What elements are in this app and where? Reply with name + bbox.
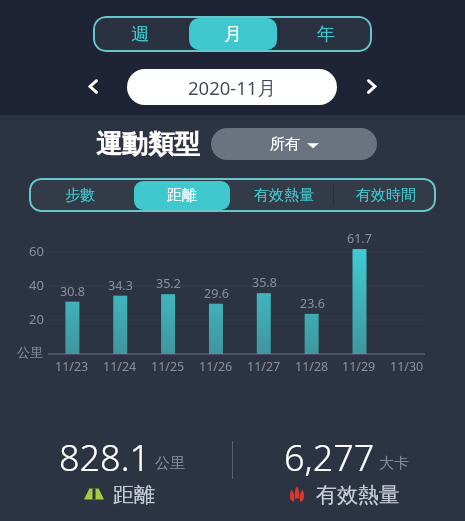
- staticText: 2020-11月: [188, 75, 276, 100]
- button[interactable]: 距離: [131, 178, 233, 212]
- button[interactable]: 828.1: [9, 434, 229, 514]
- staticText: 有效時間: [356, 186, 416, 205]
- staticText: 公里: [155, 454, 185, 473]
- staticText: 23.6: [300, 295, 325, 312]
- button[interactable]: 有效時間: [335, 178, 436, 212]
- staticText: 11/24: [103, 358, 137, 375]
- staticText: 運動類型: [96, 128, 200, 161]
- staticText: 29.6: [204, 285, 229, 302]
- staticText: 35.2: [156, 275, 181, 292]
- staticText: 有效熱量: [316, 482, 400, 506]
- button[interactable]: 2020-11月: [127, 69, 337, 105]
- staticText: 週: [131, 23, 149, 46]
- staticText: 828.1: [59, 433, 151, 479]
- staticText: 40: [29, 276, 44, 294]
- staticText: 20: [29, 310, 44, 328]
- staticText: 11/28: [295, 358, 329, 375]
- staticText: 11/29: [342, 358, 376, 375]
- staticText: 公里: [17, 344, 43, 360]
- staticText: 34.3: [108, 277, 133, 294]
- staticText: 月: [224, 23, 242, 46]
- staticText: 有效熱量: [254, 186, 314, 205]
- button[interactable]: 週: [93, 16, 186, 52]
- staticText: 距離: [113, 482, 155, 506]
- staticText: 6,277: [284, 433, 375, 479]
- staticText: 11/23: [55, 358, 89, 375]
- button[interactable]: 6,277: [233, 434, 453, 514]
- staticText: 11/27: [247, 358, 281, 375]
- staticText: 年: [317, 23, 335, 46]
- staticText: 步數: [65, 186, 95, 205]
- button[interactable]: 步數: [29, 178, 131, 212]
- staticText: 11/25: [151, 358, 185, 375]
- button[interactable]: 月: [186, 16, 279, 52]
- staticText: 11/30: [390, 358, 424, 375]
- button[interactable]: 年: [279, 16, 372, 52]
- button[interactable]: Previous period: [79, 72, 107, 100]
- staticText: 61.7: [347, 230, 372, 247]
- staticText: 30.8: [60, 283, 85, 300]
- staticText: 35.8: [252, 274, 277, 291]
- button[interactable]: Next period: [357, 72, 385, 100]
- button[interactable]: 有效熱量: [233, 178, 335, 212]
- staticText: 距離: [167, 186, 197, 205]
- button[interactable]: 所有: [211, 128, 377, 160]
- staticText: 大卡: [379, 454, 409, 473]
- staticText: 11/26: [199, 358, 233, 375]
- staticText: 所有: [270, 135, 300, 154]
- staticText: 60: [29, 242, 44, 260]
